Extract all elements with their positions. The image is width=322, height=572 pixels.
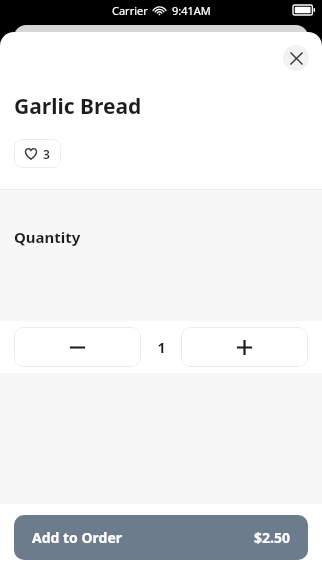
- staticText: 9:41AM: [172, 3, 211, 18]
- staticText: Quantity: [14, 227, 81, 247]
- button[interactable]: Decrease quantity: [14, 327, 141, 367]
- staticText: Garlic Bread: [14, 92, 142, 121]
- staticText: 3: [43, 146, 50, 162]
- button[interactable]: Close: [283, 45, 309, 71]
- button[interactable]: 3: [14, 139, 61, 168]
- staticText: Add to Order: [32, 528, 123, 547]
- button[interactable]: Increase quantity: [181, 327, 308, 367]
- button[interactable]: Add to Order: [14, 515, 308, 560]
- staticText: Carrier: [112, 3, 148, 18]
- staticText: $2.50: [254, 528, 290, 547]
- staticText: 1: [157, 338, 166, 357]
